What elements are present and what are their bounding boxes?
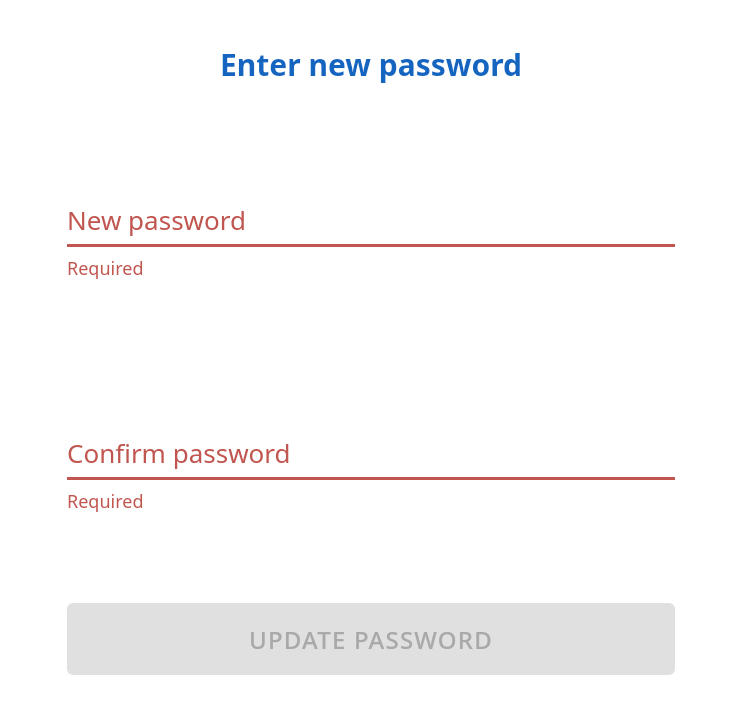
button[interactable]: Confirm password: [67, 428, 675, 514]
staticText: New password: [67, 202, 246, 237]
staticText: Enter new password: [67, 44, 675, 85]
staticText: Required: [67, 489, 144, 514]
staticText: Confirm password: [67, 435, 291, 470]
button[interactable]: Update password: [67, 603, 675, 675]
button[interactable]: New password: [67, 195, 675, 281]
staticText: UPDATE PASSWORD: [249, 623, 493, 656]
staticText: Required: [67, 256, 144, 281]
